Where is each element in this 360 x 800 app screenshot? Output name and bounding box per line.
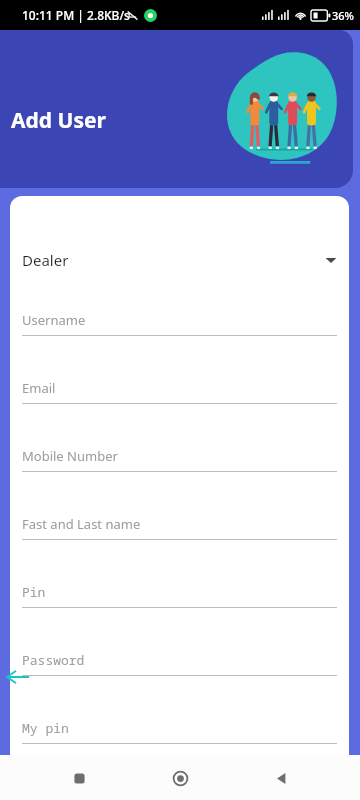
staticText: 36% — [332, 8, 354, 23]
button[interactable]: Username — [22, 311, 337, 336]
button[interactable]: Back — [259, 756, 303, 800]
other: Open dropdown — [325, 254, 337, 266]
staticText: Add User — [11, 106, 106, 135]
button[interactable]: Password — [22, 651, 337, 676]
button[interactable]: Recent apps — [57, 756, 101, 800]
button[interactable]: Mobile Number — [22, 447, 337, 472]
button[interactable]: Dealer — [22, 246, 337, 274]
staticText: Mobile Number — [22, 447, 118, 465]
button[interactable]: My pin — [22, 719, 337, 744]
staticText: Dealer — [22, 250, 325, 270]
staticText: SUBMIT — [154, 772, 207, 791]
button[interactable]: Home — [158, 756, 202, 800]
staticText: Username — [22, 311, 86, 329]
button[interactable]: Back — [4, 664, 30, 690]
staticText: 10:11 PM | 2.8KB/s — [22, 7, 130, 23]
button[interactable]: Fast and Last name — [22, 515, 337, 540]
staticText: Pin — [22, 583, 46, 601]
staticText: My pin — [22, 719, 69, 737]
staticText: Email — [22, 379, 56, 397]
button[interactable]: Email — [22, 379, 337, 404]
staticText: Fast and Last name — [22, 515, 141, 533]
button[interactable]: SUBMIT — [105, 762, 255, 800]
button[interactable]: Pin — [22, 583, 337, 608]
staticText: Password — [22, 651, 85, 669]
